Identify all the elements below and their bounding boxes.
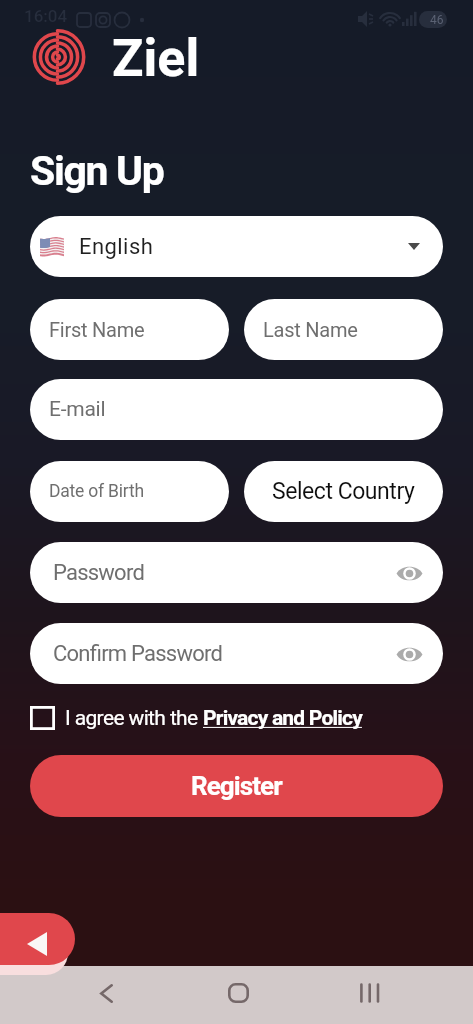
button[interactable]: Last Name (244, 299, 443, 360)
button[interactable]: Back (82, 969, 130, 1017)
button[interactable]: First Name (30, 299, 229, 360)
button[interactable]: Date of Birth (30, 461, 229, 522)
staticText: 16:04 (24, 6, 68, 26)
button[interactable]: E-mail (30, 379, 443, 440)
button[interactable]: Recent apps (345, 969, 393, 1017)
button[interactable]: I agree checkbox (29, 705, 55, 731)
staticText: E-mail (49, 397, 106, 422)
staticText: Last Name (263, 318, 358, 341)
button[interactable]: Password (30, 542, 443, 603)
staticText: 46 (430, 13, 444, 27)
button[interactable]: English (30, 216, 443, 277)
staticText: Confirm Password (53, 641, 223, 667)
button[interactable]: Show password (391, 555, 427, 591)
button[interactable]: Register (30, 755, 443, 817)
staticText: Register (191, 771, 282, 801)
staticText: Sign Up (30, 147, 164, 195)
staticText: First Name (49, 318, 145, 341)
button[interactable]: Home (214, 969, 262, 1017)
staticText: English (79, 234, 154, 260)
staticText: Password (53, 560, 145, 586)
button[interactable]: Select Country (244, 461, 443, 522)
staticText: Ziel (112, 28, 200, 89)
staticText: Date of Birth (49, 481, 144, 502)
staticText: Select Country (272, 478, 415, 505)
button[interactable]: Confirm Password (30, 623, 443, 684)
staticText: I agree with the (65, 706, 203, 731)
button[interactable]: Privacy and Policy (203, 706, 362, 731)
button[interactable]: Show password (391, 636, 427, 672)
button[interactable]: Back (0, 913, 75, 965)
